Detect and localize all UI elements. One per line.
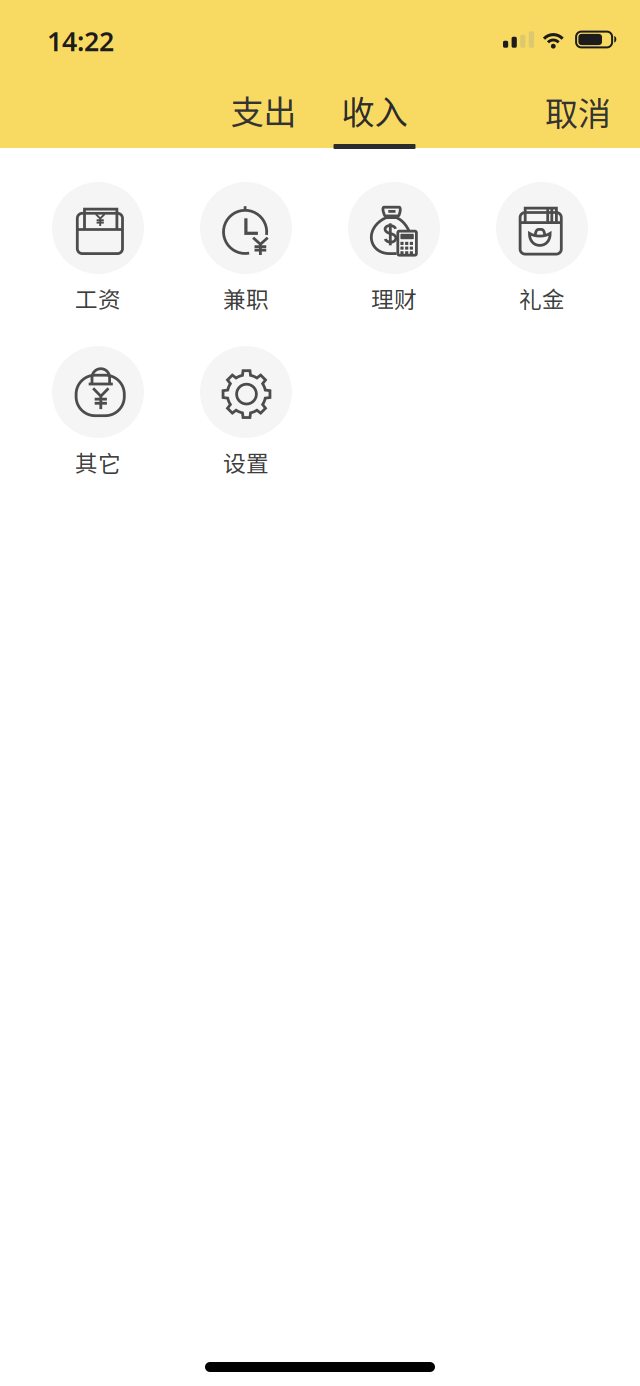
- staticText: 14:22: [47, 23, 114, 59]
- button[interactable]: 支出: [208, 60, 319, 150]
- button[interactable]: 收入: [319, 60, 430, 150]
- staticText: 理财: [371, 282, 417, 314]
- staticText: 礼金: [519, 282, 565, 314]
- staticText: 其它: [75, 446, 121, 478]
- staticText: 取消: [545, 87, 611, 136]
- button[interactable]: 工资: [24, 180, 172, 314]
- staticText: 收入: [341, 86, 407, 134]
- staticText: 支出: [230, 86, 296, 134]
- button[interactable]: 兼职: [172, 180, 320, 314]
- button[interactable]: 取消: [526, 53, 630, 156]
- button[interactable]: 理财: [320, 180, 468, 314]
- button[interactable]: 礼金: [468, 180, 616, 314]
- staticText: 兼职: [223, 282, 269, 314]
- button[interactable]: 其它: [24, 344, 172, 478]
- staticText: 工资: [75, 282, 121, 314]
- staticText: 设置: [223, 446, 269, 478]
- button[interactable]: 设置: [172, 344, 320, 478]
